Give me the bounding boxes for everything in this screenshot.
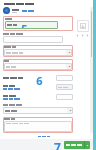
button[interactable] xyxy=(3,88,20,90)
button[interactable]: Open list xyxy=(66,49,72,56)
staticText: 5 xyxy=(21,21,28,29)
button[interactable] xyxy=(56,75,73,81)
button[interactable] xyxy=(56,84,73,90)
button[interactable]: Open list xyxy=(67,107,73,114)
button[interactable]: Open list xyxy=(4,63,72,70)
button[interactable]: Profile photo xyxy=(3,7,10,14)
button[interactable]: More save options xyxy=(64,141,90,149)
button[interactable]: Open list xyxy=(3,107,73,114)
button[interactable] xyxy=(4,121,72,132)
button[interactable]: Add image xyxy=(77,20,89,32)
staticText: 7 xyxy=(54,139,61,150)
button[interactable]: More save options xyxy=(85,141,90,149)
button[interactable] xyxy=(38,136,50,137)
button[interactable] xyxy=(3,98,20,100)
button[interactable] xyxy=(22,10,34,12)
button[interactable]: More options xyxy=(86,34,89,37)
button[interactable]: Open list xyxy=(4,49,72,56)
button[interactable] xyxy=(56,94,73,100)
button[interactable]: Edit image xyxy=(76,34,79,37)
button[interactable] xyxy=(3,36,63,43)
staticText: 6 xyxy=(36,73,43,88)
button[interactable]: Delete image xyxy=(81,34,84,37)
button[interactable]: Open list xyxy=(66,63,72,70)
button[interactable]: Step 5 xyxy=(5,21,58,29)
